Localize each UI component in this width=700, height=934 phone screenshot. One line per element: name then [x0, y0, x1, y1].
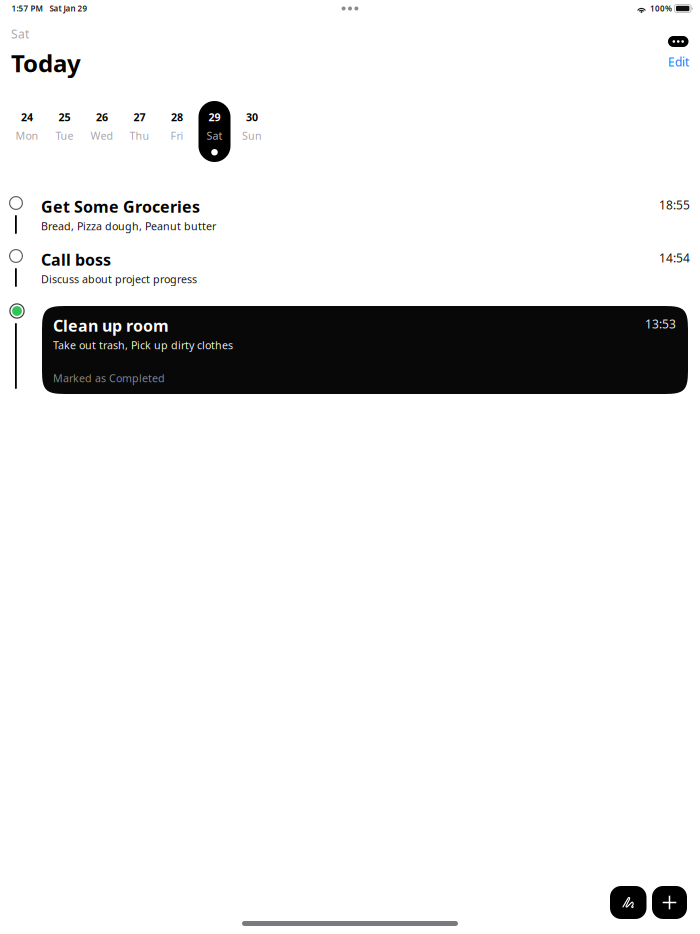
button[interactable]: 29: [198, 101, 230, 162]
button[interactable]: Mark as completed: [5, 245, 27, 267]
staticText: Discuss about project progress: [41, 272, 197, 286]
staticText: Bread, Pizza dough, Peanut butter: [41, 219, 216, 233]
staticText: 28: [171, 110, 183, 124]
staticText: Sat: [206, 128, 222, 143]
staticText: 30: [246, 110, 258, 124]
staticText: Get Some Groceries: [41, 196, 200, 217]
staticText: Call boss: [41, 249, 111, 270]
staticText: Mon: [15, 128, 38, 143]
staticText: Sun: [242, 128, 262, 143]
staticText: Edit: [668, 54, 689, 70]
button[interactable]: 25: [48, 101, 80, 162]
staticText: 26: [96, 110, 108, 124]
staticText: 25: [58, 110, 70, 124]
button[interactable]: 30: [236, 101, 268, 162]
button[interactable]: 27: [123, 101, 155, 162]
staticText: 14:54: [659, 250, 690, 266]
button[interactable]: Edit: [668, 54, 689, 70]
staticText: Tue: [55, 128, 73, 143]
staticText: 100%: [650, 3, 672, 14]
staticText: Sat: [11, 26, 29, 42]
button[interactable]: Draw: [610, 886, 646, 919]
staticText: 1:57 PM: [11, 3, 42, 14]
button[interactable]: 26: [86, 101, 118, 162]
staticText: Clean up room: [53, 315, 169, 336]
button[interactable]: 24: [11, 101, 43, 162]
button[interactable]: 28: [161, 101, 193, 162]
button[interactable]: More options: [668, 36, 688, 47]
staticText: Today: [11, 47, 81, 79]
staticText: 18:55: [659, 197, 690, 213]
button[interactable]: Call boss: [41, 249, 690, 284]
staticText: Wed: [90, 128, 113, 143]
staticText: 27: [133, 110, 145, 124]
button[interactable]: Add task: [652, 886, 687, 919]
staticText: 13:53: [645, 316, 676, 332]
staticText: 24: [21, 110, 33, 124]
staticText: Sat Jan 29: [49, 3, 87, 14]
staticText: Fri: [170, 128, 183, 143]
button[interactable]: Get Some Groceries: [41, 196, 690, 231]
button[interactable]: Mark as completed: [5, 192, 27, 214]
staticText: Marked as Completed: [53, 371, 165, 385]
staticText: Take out trash, Pick up dirty clothes: [53, 338, 233, 352]
button[interactable]: Mark as not completed: [6, 300, 28, 322]
staticText: 29: [208, 110, 220, 124]
staticText: Thu: [129, 128, 149, 143]
button[interactable]: Clean up room: [42, 306, 688, 394]
